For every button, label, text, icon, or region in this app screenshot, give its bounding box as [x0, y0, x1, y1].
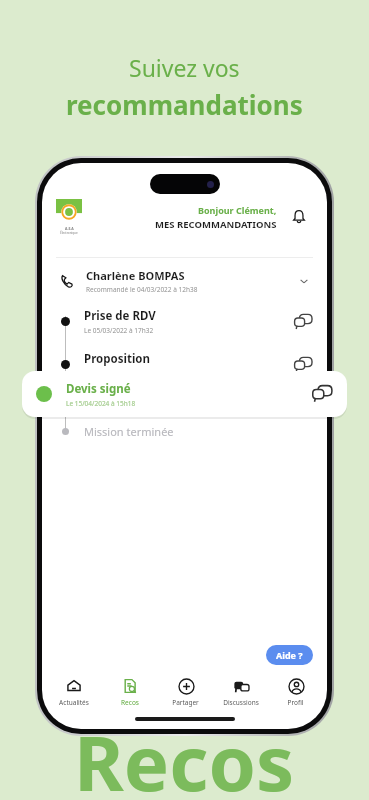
button[interactable]: Aide ?	[266, 645, 313, 665]
staticText: Devis signé	[66, 381, 131, 397]
button[interactable]: Prise de RDV	[56, 308, 313, 335]
button[interactable]: Mission terminée	[56, 424, 313, 439]
staticText: Recos	[74, 710, 295, 800]
button[interactable]: Actualités	[46, 675, 102, 709]
staticText: Discussions	[223, 698, 259, 707]
staticText: Recos	[121, 698, 139, 707]
button[interactable]: Devis signé	[22, 371, 347, 417]
staticText: Proposition	[84, 351, 150, 367]
button[interactable]: Charlène BOMPAS	[56, 268, 313, 294]
staticText: Profil	[287, 698, 304, 707]
staticText: Recommandé le 04/03/2022 à 12h38	[86, 285, 198, 294]
button[interactable]: Profil	[268, 675, 323, 709]
staticText: Aide ?	[276, 649, 303, 661]
staticText: MES RECOMMANDATIONS	[155, 218, 277, 231]
staticText: recommandations	[66, 87, 303, 122]
button[interactable]: Recos	[102, 675, 158, 709]
staticText: Bonjour Clément,	[198, 204, 277, 216]
staticText: Électronique	[60, 231, 78, 235]
staticText: Charlène BOMPAS	[86, 268, 185, 283]
staticText: Le 15/04/2024 à 15h18	[66, 399, 136, 408]
button[interactable]: Partager	[158, 675, 213, 709]
button[interactable]: Proposition	[56, 351, 313, 378]
staticText: Suivez vos	[129, 52, 240, 83]
staticText: Mission terminée	[84, 424, 174, 439]
staticText: A.E.A	[65, 226, 74, 231]
staticText: Partager	[172, 698, 199, 707]
staticText: Le 05/03/2022 à 17h32	[84, 326, 154, 335]
button[interactable]: Discussions	[213, 675, 268, 709]
button[interactable]: Notifications	[285, 203, 313, 231]
staticText: Prise de RDV	[84, 308, 156, 324]
staticText: Actualités	[59, 698, 89, 707]
